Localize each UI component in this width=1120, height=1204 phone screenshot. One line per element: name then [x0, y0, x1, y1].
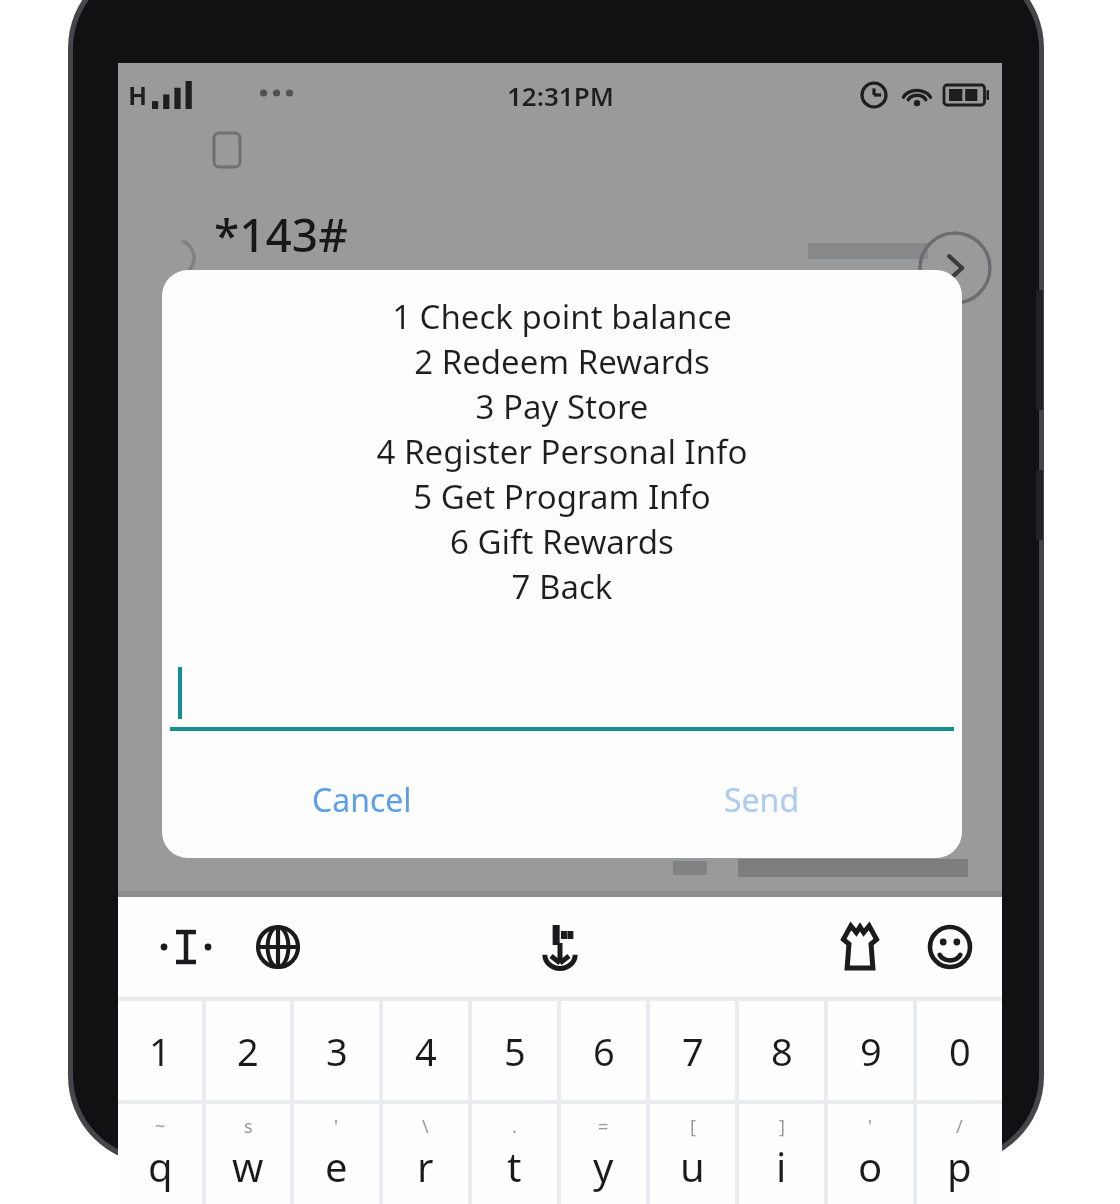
staticText: 9	[860, 1025, 882, 1077]
staticText: H	[128, 78, 148, 112]
staticText: q	[148, 1139, 173, 1193]
staticText: \	[422, 1114, 429, 1139]
staticText: ~	[155, 1114, 166, 1139]
staticText: ]	[779, 1114, 785, 1139]
button[interactable]: 6	[561, 1001, 646, 1100]
button[interactable]: '	[294, 1104, 379, 1204]
button[interactable]: 9	[828, 1001, 913, 1100]
staticText: =	[598, 1114, 609, 1139]
button[interactable]: 2	[206, 1001, 290, 1100]
staticText: 4	[415, 1025, 437, 1077]
button[interactable]: ~	[118, 1104, 202, 1204]
staticText: Cancel	[312, 778, 412, 822]
staticText: 0	[949, 1025, 971, 1077]
staticText: w	[232, 1139, 264, 1193]
staticText: '	[334, 1114, 339, 1139]
staticText: o	[858, 1139, 883, 1193]
button[interactable]: 7	[650, 1001, 735, 1100]
staticText: /	[956, 1114, 963, 1139]
button[interactable]: .	[472, 1104, 557, 1204]
staticText: 3 Pay Store	[162, 384, 962, 429]
staticText: 7 Back	[162, 564, 962, 609]
staticText: e	[325, 1139, 348, 1193]
staticText: 6	[593, 1025, 615, 1077]
button[interactable]: /	[917, 1104, 1002, 1204]
staticText: Send	[724, 778, 800, 822]
button[interactable]: '	[828, 1104, 913, 1204]
staticText: 5	[504, 1025, 526, 1077]
staticText: t	[507, 1139, 522, 1193]
staticText: s	[244, 1114, 253, 1139]
button[interactable]: 3	[294, 1001, 379, 1100]
staticText: 2 Redeem Rewards	[162, 339, 962, 384]
staticText: u	[680, 1139, 705, 1193]
button[interactable]: Send	[562, 763, 962, 837]
staticText: 8	[771, 1025, 793, 1077]
button[interactable]: Keyboard theme	[818, 905, 902, 989]
staticText: [	[690, 1114, 696, 1139]
staticText: 3	[326, 1025, 348, 1077]
button[interactable]: 0	[917, 1001, 1002, 1100]
button[interactable]: Text cursor	[144, 905, 228, 989]
staticText: *143#	[214, 203, 348, 266]
staticText: '	[868, 1114, 873, 1139]
button[interactable]: s	[206, 1104, 290, 1204]
staticText: r	[417, 1139, 434, 1193]
staticText: p	[947, 1139, 972, 1193]
button[interactable]: \	[383, 1104, 468, 1204]
button[interactable]: 8	[739, 1001, 824, 1100]
button[interactable]: 5	[472, 1001, 557, 1100]
staticText: i	[776, 1139, 787, 1193]
button[interactable]: Emoji	[908, 905, 992, 989]
staticText: .	[512, 1114, 517, 1139]
staticText: 1	[149, 1025, 171, 1077]
staticText: y	[593, 1139, 614, 1193]
button[interactable]: Send USSD code	[918, 231, 992, 305]
button[interactable]: [	[650, 1104, 735, 1204]
staticText: 4 Register Personal Info	[162, 429, 962, 474]
staticText: 2	[237, 1025, 259, 1077]
button[interactable]: ]	[739, 1104, 824, 1204]
button[interactable]: =	[561, 1104, 646, 1204]
staticText: 6 Gift Rewards	[162, 519, 962, 564]
button[interactable]: 1	[118, 1001, 202, 1100]
staticText: 12:31PM	[507, 78, 614, 113]
button[interactable]: Cancel	[162, 763, 562, 837]
button[interactable]: Language	[236, 905, 320, 989]
staticText: 7	[682, 1025, 704, 1077]
button[interactable]: Handwriting	[518, 905, 602, 989]
button[interactable]: 4	[383, 1001, 468, 1100]
staticText: 1 Check point balance	[162, 294, 962, 339]
staticText: 5 Get Program Info	[162, 474, 962, 519]
